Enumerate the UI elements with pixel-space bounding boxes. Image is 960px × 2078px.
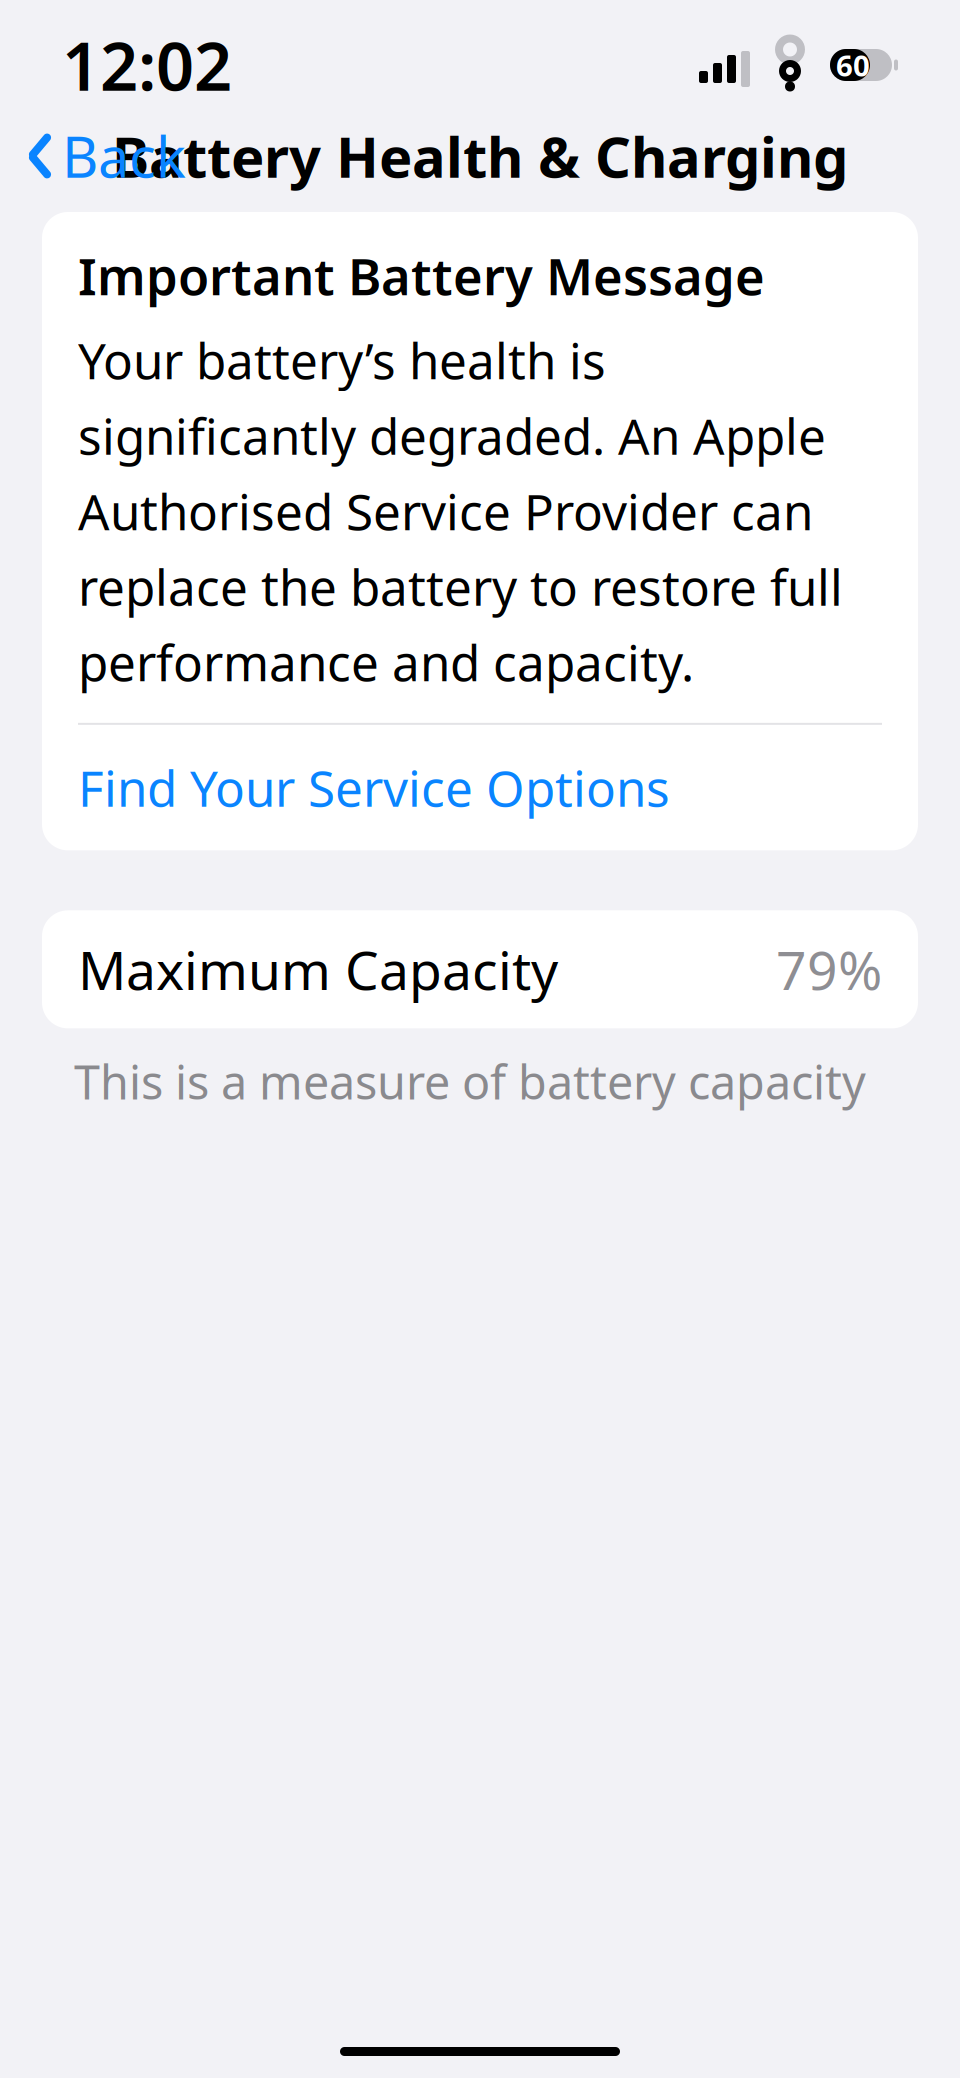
button[interactable]: Back <box>6 103 208 209</box>
staticText: Important Battery Message <box>78 242 765 309</box>
staticText: Maximum Capacity <box>78 934 558 1005</box>
staticText: Your battery’s health is significantly d… <box>78 327 843 695</box>
staticText: This is a measure of battery capacity re… <box>74 1050 877 1325</box>
staticText: 60 <box>836 45 870 84</box>
button[interactable]: Find Your Service Options <box>78 725 882 850</box>
staticText: Battery Health & Charging <box>112 119 848 193</box>
staticText: Back <box>62 119 186 193</box>
staticText: To reduce battery ageing, iPhone learns … <box>74 1989 863 2078</box>
staticText: 79% <box>776 934 882 1005</box>
staticText: 12:02 <box>62 21 232 109</box>
staticText: Find Your Service Options <box>78 755 670 820</box>
